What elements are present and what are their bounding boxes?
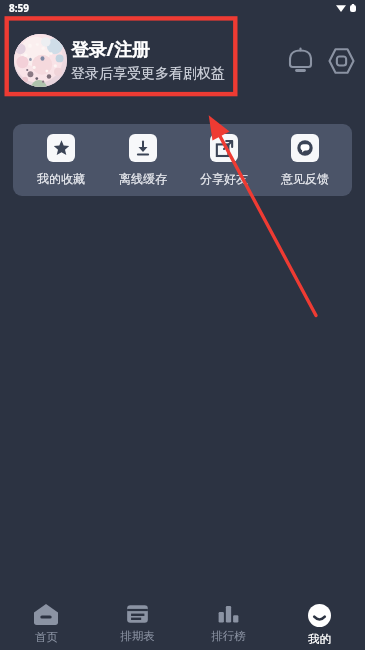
staticText: 我的收藏 [37,171,85,186]
button[interactable]: 离线缓存 [102,134,183,186]
button[interactable]: 排期表 [92,596,183,649]
button[interactable]: 意见反馈 [264,134,345,186]
button[interactable]: 排行榜 [183,596,274,649]
staticText: 离线缓存 [119,171,167,186]
staticText: 登录/注册 [71,37,150,61]
button[interactable]: Settings [325,44,358,77]
staticText: 排期表 [120,629,155,643]
button[interactable]: 登录/注册 [71,37,225,83]
button[interactable]: Notifications [284,44,317,77]
staticText: 首页 [35,630,58,644]
staticText: 我的 [308,632,331,644]
button[interactable]: 分享好友 [183,134,264,186]
staticText: 登录后享受更多看剧权益 [71,65,225,83]
staticText: 意见反馈 [281,171,329,186]
staticText: 分享好友 [200,171,248,186]
button[interactable]: 我的收藏 [20,134,102,186]
button[interactable]: Avatar [14,34,67,87]
button[interactable]: 首页 [0,596,92,650]
button[interactable]: 我的 [274,596,365,650]
staticText: 8:59 [9,1,29,15]
staticText: 排行榜 [211,629,246,643]
